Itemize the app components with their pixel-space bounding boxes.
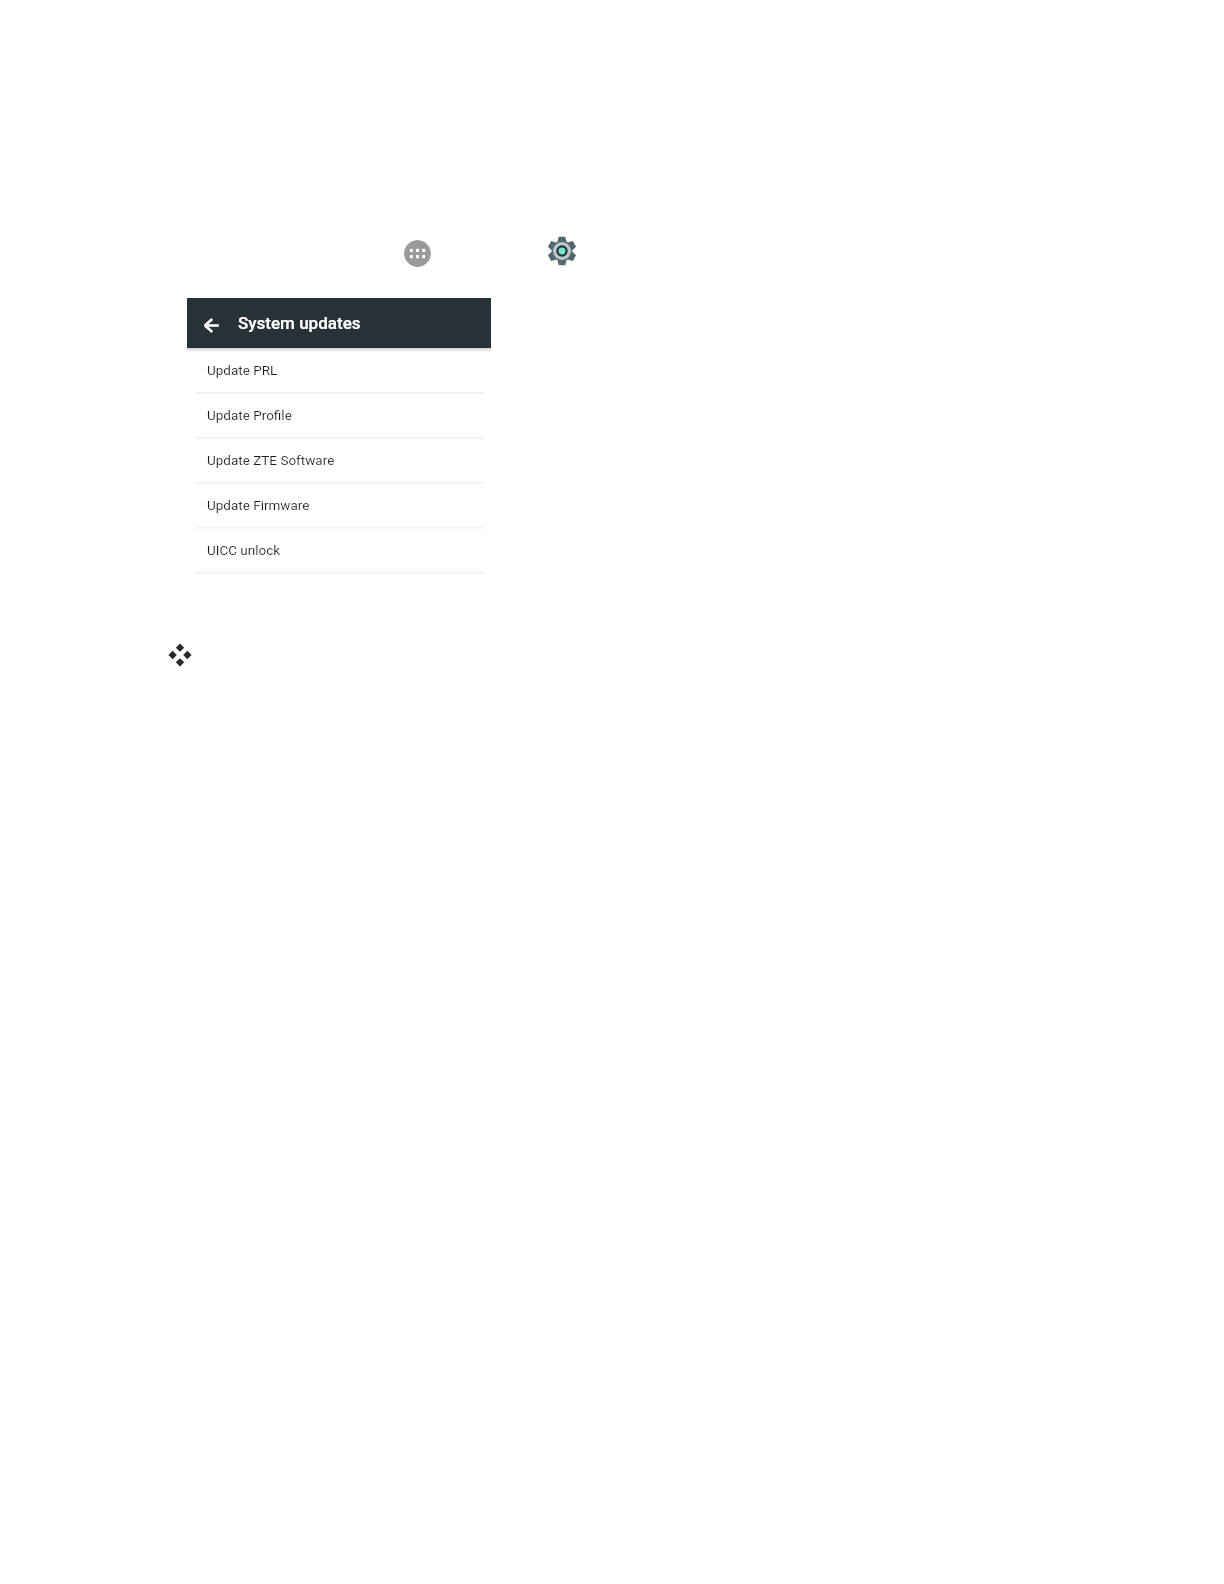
button[interactable]: Update PRL (187, 348, 491, 393)
staticText: Update Profile (207, 407, 292, 423)
button[interactable]: Move (169, 644, 191, 666)
staticText: Update ZTE Software (207, 452, 335, 468)
button[interactable]: Update Firmware (187, 483, 491, 528)
staticText: System updates (238, 313, 361, 333)
button[interactable]: Update ZTE Software (187, 438, 491, 483)
staticText: Update PRL (207, 362, 278, 378)
button[interactable]: Back (187, 298, 236, 347)
staticText: Update Firmware (207, 497, 310, 513)
button[interactable]: UICC unlock (187, 528, 491, 573)
button[interactable]: Apps (404, 240, 431, 267)
button[interactable]: Settings (547, 236, 577, 266)
staticText: UICC unlock (207, 542, 281, 558)
button[interactable]: Update Profile (187, 393, 491, 438)
